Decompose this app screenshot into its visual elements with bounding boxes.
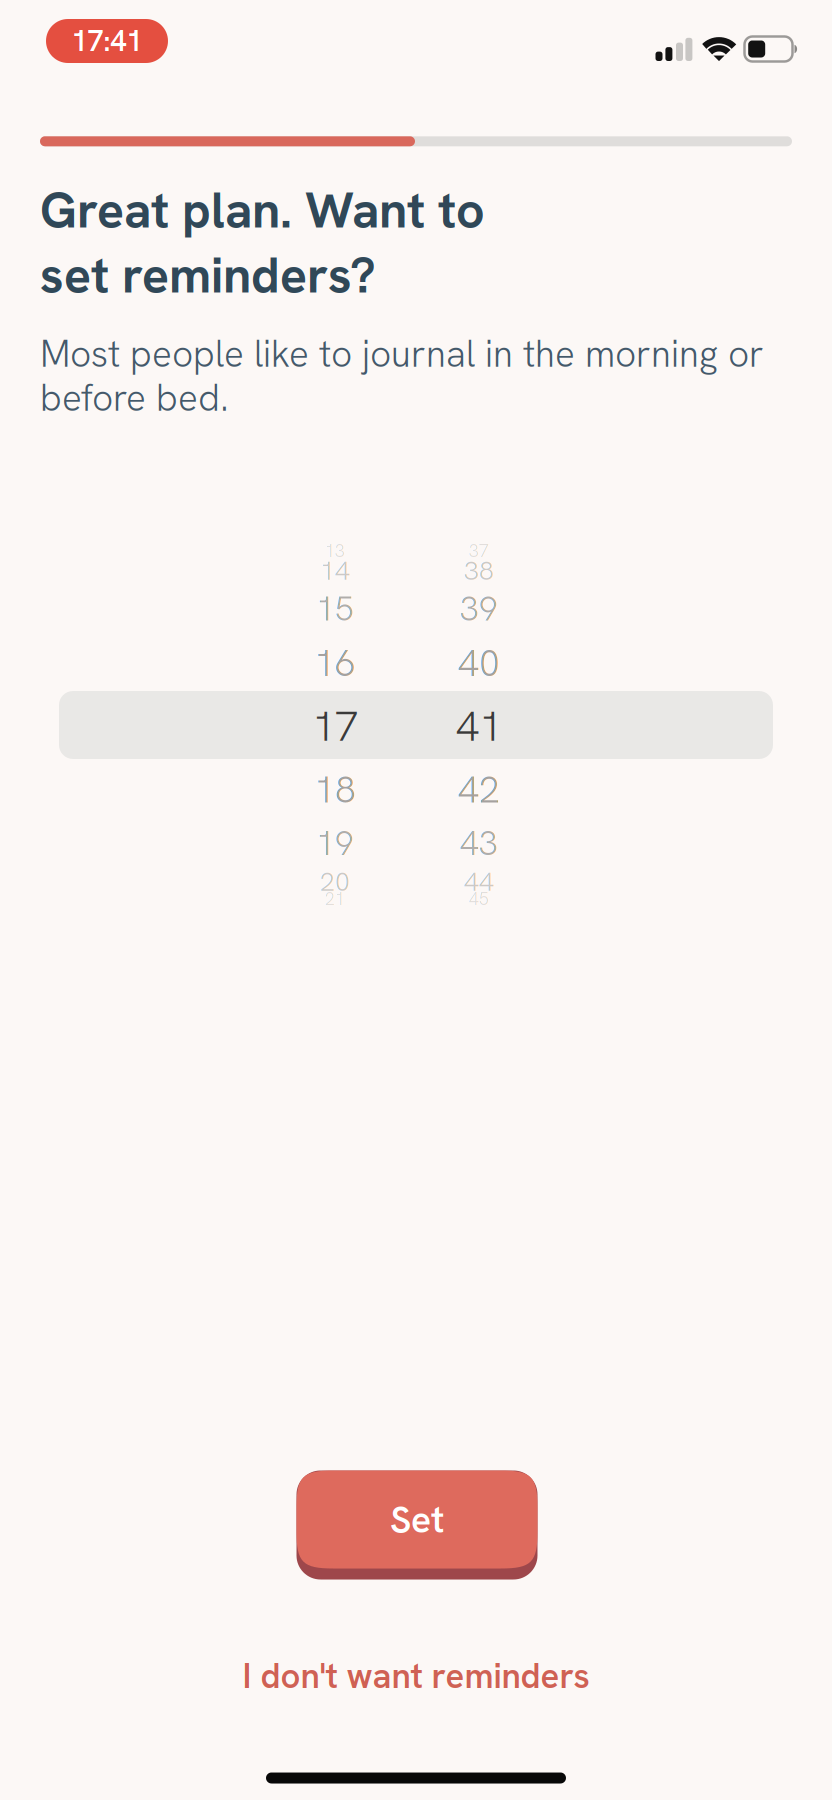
staticText: 39 — [460, 587, 498, 630]
staticText: 20 — [320, 864, 350, 899]
button[interactable]: Set — [296, 1470, 537, 1579]
staticText: 18 — [314, 765, 356, 814]
staticText: 38 — [464, 553, 494, 588]
staticText: 14 — [320, 553, 350, 588]
staticText: before bed. — [40, 374, 229, 422]
staticText: 17:41 — [71, 22, 142, 60]
staticText: 41 — [456, 699, 502, 753]
staticText: 42 — [458, 765, 500, 814]
staticText: 21 — [325, 888, 345, 910]
staticText: 15 — [316, 587, 354, 630]
staticText: 40 — [458, 639, 500, 687]
staticText: set reminders? — [40, 242, 376, 308]
staticText: 44 — [464, 864, 494, 899]
staticText: 13 — [325, 540, 345, 562]
staticText: 37 — [469, 540, 489, 562]
staticText: 43 — [460, 822, 498, 865]
button[interactable]: I don't want reminders — [206, 1641, 626, 1711]
staticText: I don't want reminders — [242, 1653, 589, 1699]
staticText: 45 — [469, 888, 489, 910]
button[interactable]: Recording indicator, 17:41 — [46, 19, 168, 63]
staticText: Set — [390, 1495, 444, 1544]
staticText: Most people like to journal in the morni… — [40, 330, 764, 378]
staticText: Great plan. Want to — [40, 177, 485, 243]
staticText: 16 — [314, 639, 356, 687]
staticText: 19 — [316, 822, 354, 865]
staticText: 17 — [312, 699, 358, 753]
